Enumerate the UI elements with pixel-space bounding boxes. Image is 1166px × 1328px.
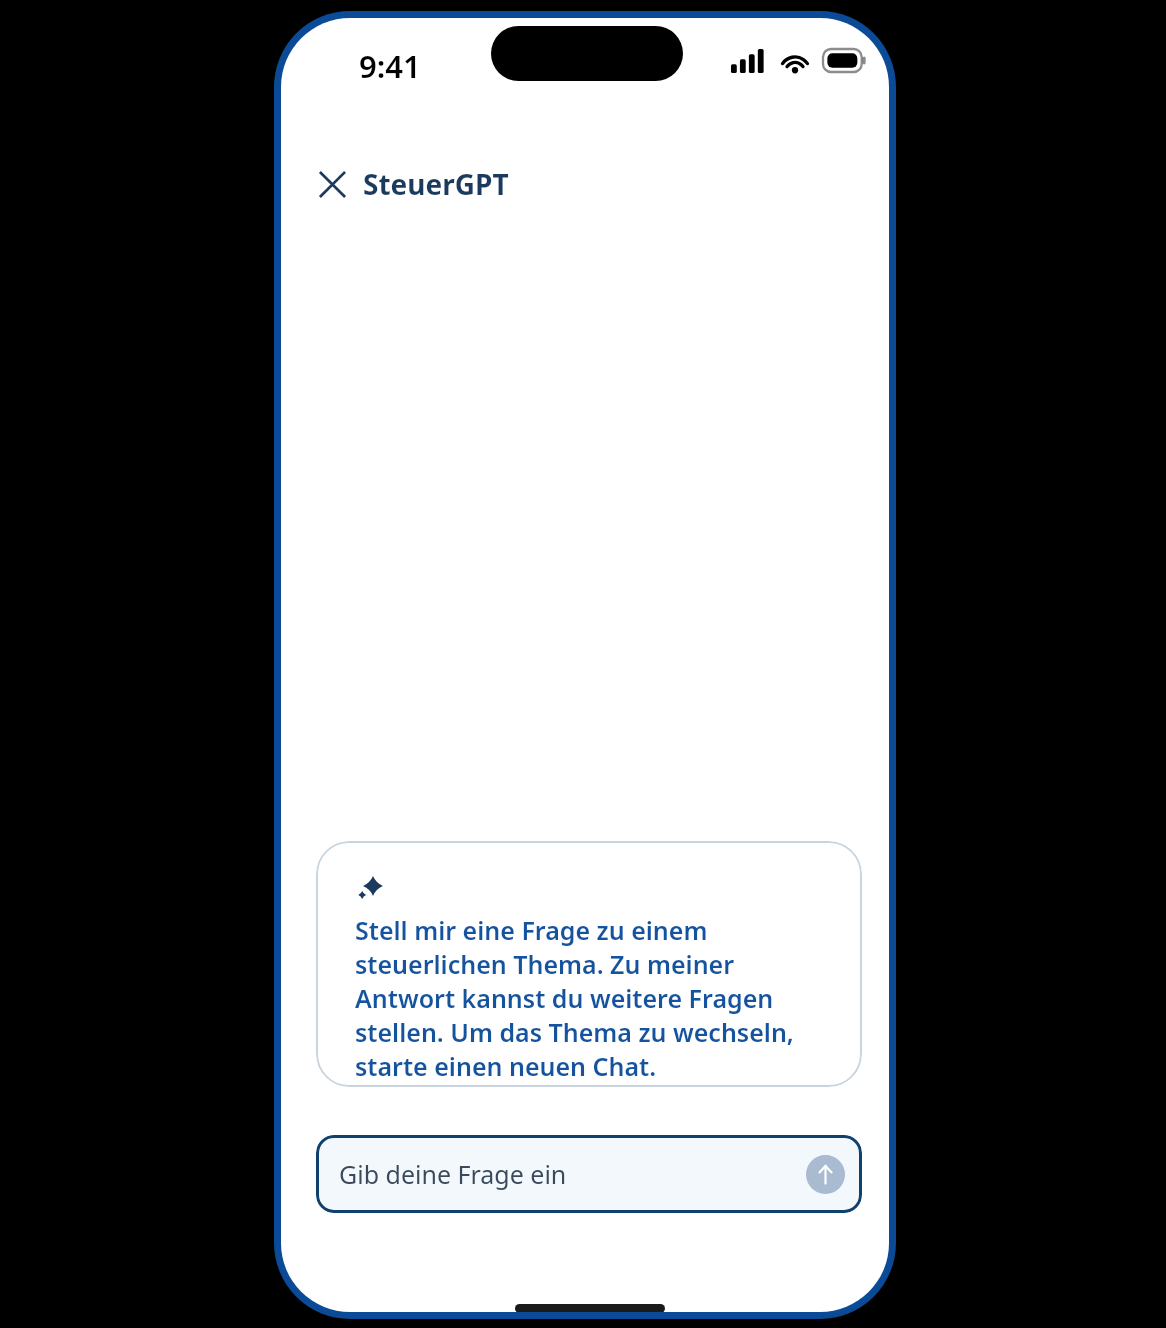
- staticText: SteuerGPT: [363, 165, 509, 203]
- button[interactable]: Send: [806, 1155, 845, 1194]
- button[interactable]: Gib deine Frage ein: [316, 1135, 862, 1213]
- button[interactable]: Close: [315, 159, 513, 209]
- staticText: Gib deine Frage ein: [339, 1157, 567, 1191]
- button[interactable]: Stell mir eine Frage zu einem steuerlich…: [316, 841, 862, 1087]
- staticText: Stell mir eine Frage zu einem steuerlich…: [355, 913, 838, 1083]
- staticText: 9:41: [359, 45, 421, 87]
- other: Close: [319, 171, 346, 198]
